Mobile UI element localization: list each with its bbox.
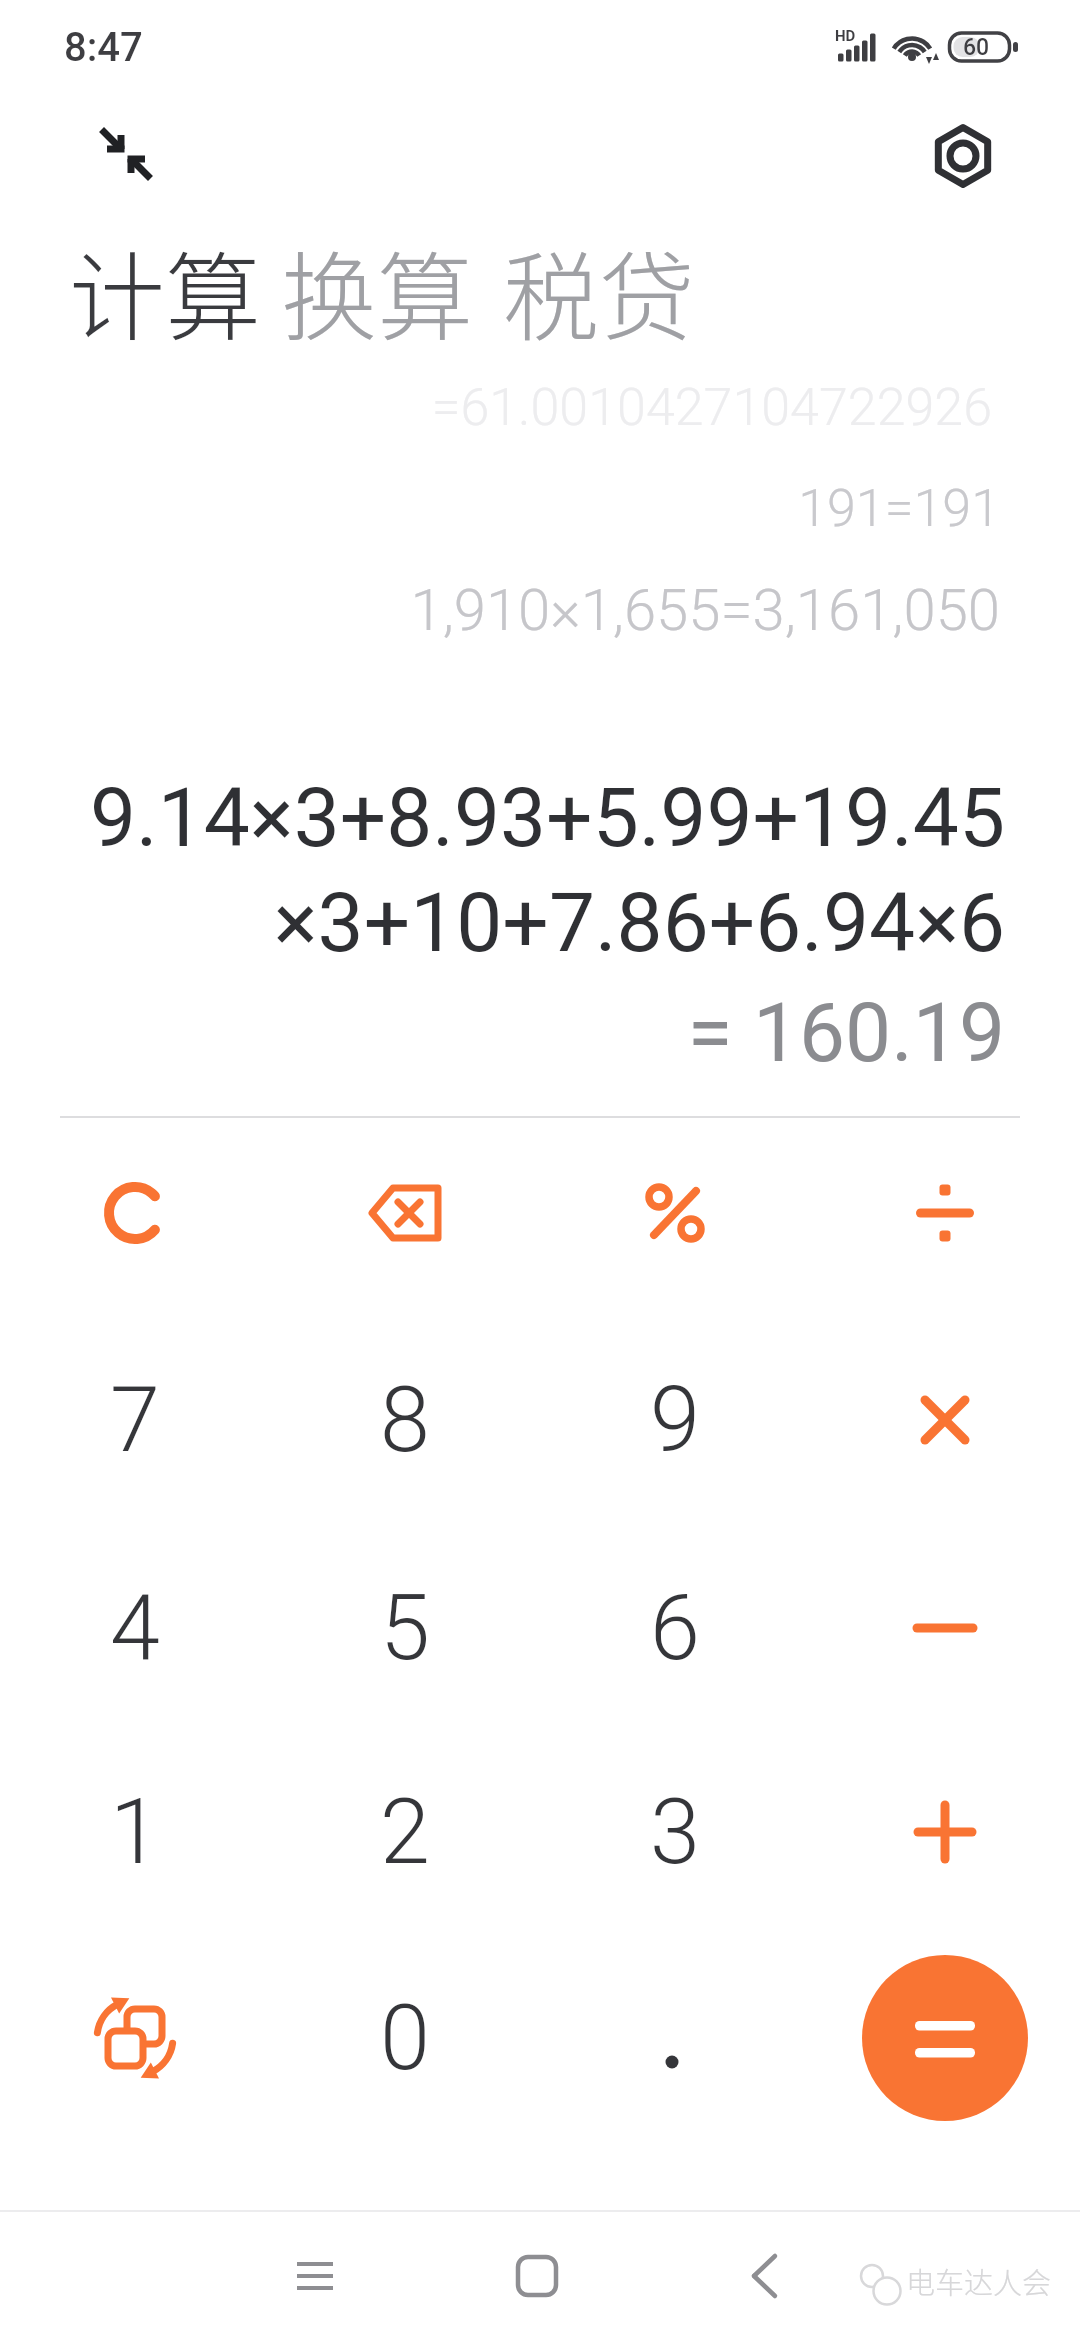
button[interactable] (850, 1737, 1040, 1927)
button[interactable]: 9 (580, 1325, 770, 1515)
staticText: 7 (110, 1368, 160, 1473)
staticText: =61.0010427104722926 (431, 377, 992, 438)
button[interactable] (492, 2231, 582, 2321)
staticText: 1,910×1,655=3,161,050 (410, 576, 1000, 644)
button[interactable] (850, 1325, 1040, 1515)
staticText: 8:47 (64, 24, 143, 71)
button[interactable] (850, 1533, 1040, 1723)
button[interactable]: 2 (310, 1737, 500, 1927)
button[interactable]: 1 (40, 1737, 230, 1927)
button[interactable]: 7 (40, 1325, 230, 1515)
button[interactable] (862, 1955, 1028, 2121)
button[interactable] (850, 1118, 1040, 1308)
staticText: 1 (110, 1780, 160, 1885)
button[interactable]: 5 (310, 1533, 500, 1723)
staticText: 0 (380, 1986, 430, 2091)
staticText: 9.14×3+8.93+5.99+19.45 (89, 770, 1005, 866)
button[interactable] (40, 1943, 230, 2133)
button[interactable] (720, 2231, 810, 2321)
button[interactable] (580, 1943, 770, 2133)
staticText: 5 (380, 1576, 430, 1681)
button[interactable]: 换算 (273, 216, 465, 355)
staticText: HD (835, 27, 856, 45)
staticText: 191=191 (798, 478, 1000, 539)
button[interactable]: 税贷 (495, 216, 687, 355)
button[interactable]: 3 (580, 1737, 770, 1927)
button[interactable] (580, 1118, 770, 1308)
staticText: 税贷 (503, 221, 695, 360)
button[interactable] (270, 2231, 360, 2321)
staticText: ×3+10+7.86+6.94×6 (273, 875, 1005, 971)
button[interactable]: 0 (310, 1943, 500, 2133)
button[interactable]: 6 (580, 1533, 770, 1723)
staticText: 8 (380, 1368, 430, 1473)
staticText: 9 (650, 1368, 700, 1473)
button[interactable]: 8 (310, 1325, 500, 1515)
button[interactable] (310, 1118, 500, 1308)
staticText: 4 (110, 1576, 160, 1681)
staticText: 6 (650, 1576, 700, 1681)
staticText: 2 (380, 1780, 430, 1885)
button[interactable] (40, 1118, 230, 1308)
staticText: = 160.19 (687, 985, 1005, 1081)
staticText: 电车达人会 (906, 2260, 1052, 2302)
button[interactable]: 计算 (61, 216, 253, 355)
button[interactable]: 4 (40, 1533, 230, 1723)
staticText: 3 (650, 1780, 700, 1885)
staticText: 计算 (69, 221, 261, 360)
staticText: 60 (963, 34, 990, 61)
staticText: 换算 (281, 221, 473, 360)
